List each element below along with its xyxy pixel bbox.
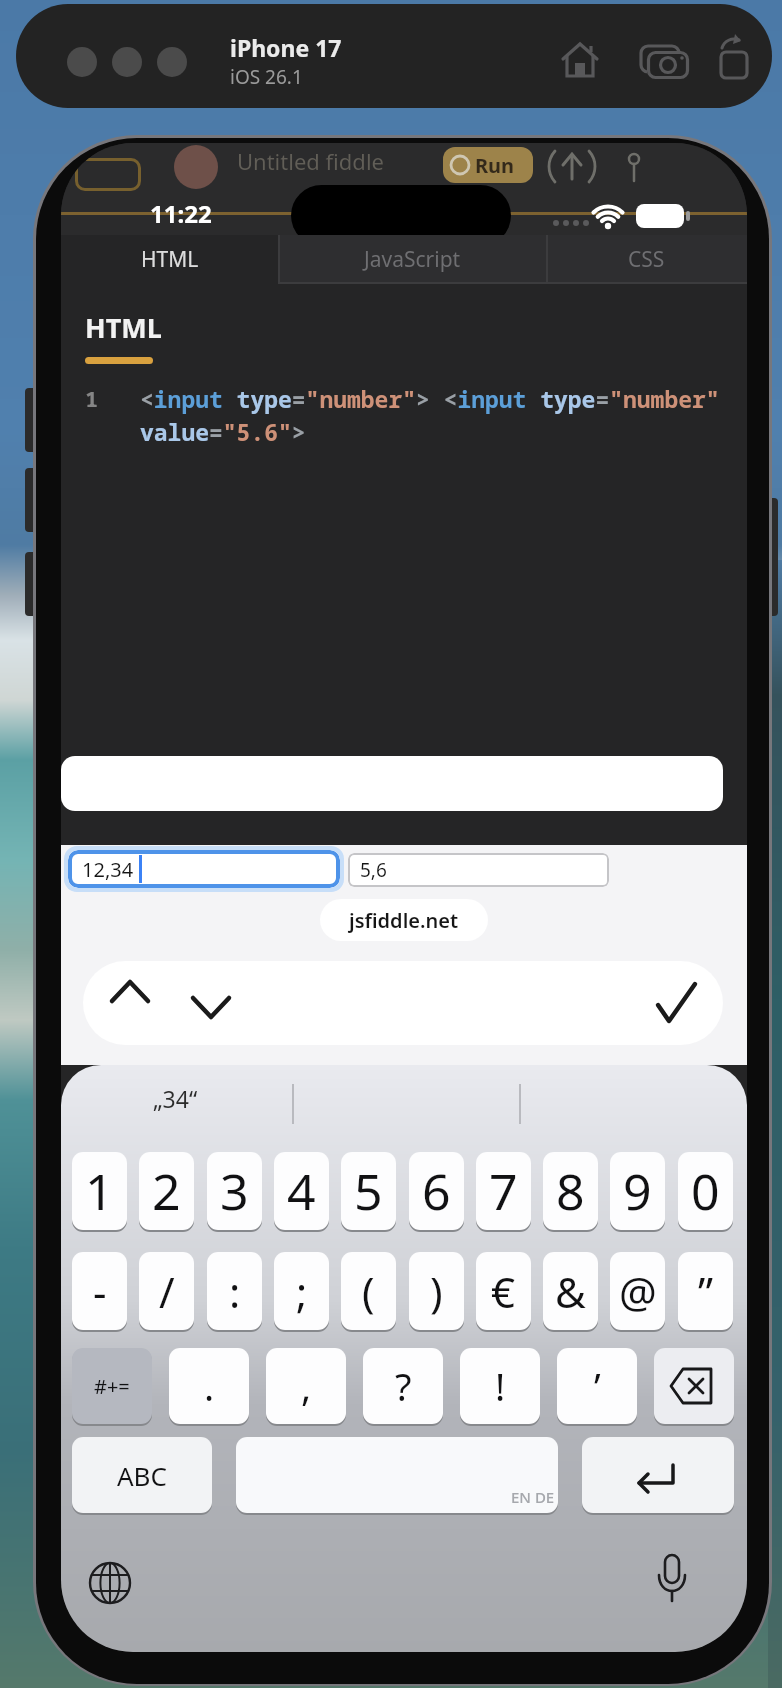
staticText: 5 [354, 1157, 383, 1225]
button[interactable]: . [169, 1348, 249, 1424]
staticText: iOS 26.1 [230, 64, 303, 90]
button[interactable]: - [72, 1252, 127, 1330]
button[interactable]: 2 [139, 1152, 194, 1230]
button[interactable]: , [266, 1348, 346, 1424]
staticText: & [555, 1263, 586, 1320]
button[interactable]: ) [409, 1252, 464, 1330]
staticText: ” [698, 1263, 714, 1320]
staticText: #+= [94, 1373, 130, 1400]
button[interactable]: ABC [72, 1437, 212, 1513]
button[interactable] [75, 158, 141, 191]
button[interactable]: 6 [409, 1152, 464, 1230]
staticText: Run [475, 152, 515, 179]
button[interactable]: 9 [610, 1152, 665, 1230]
button[interactable] [61, 235, 278, 283]
staticText: 5,6 [360, 857, 387, 883]
staticText: 1 [85, 1157, 114, 1225]
staticText: ABC [117, 1458, 167, 1493]
staticText: ( [362, 1263, 375, 1320]
staticText: / [159, 1263, 175, 1320]
staticText: „34“ [153, 1083, 198, 1114]
button[interactable]: 4 [274, 1152, 329, 1230]
button[interactable]: 8 [543, 1152, 598, 1230]
button[interactable]: 0 [678, 1152, 733, 1230]
button[interactable]: ” [678, 1252, 733, 1330]
button[interactable]: #+= [72, 1348, 152, 1424]
button[interactable] [101, 969, 161, 1037]
staticText: 6 [422, 1157, 451, 1225]
staticText: ! [495, 1360, 506, 1412]
staticText: . [204, 1360, 215, 1412]
staticText: CSS [628, 245, 665, 274]
staticText: 8 [556, 1157, 585, 1225]
staticText: value="5.6"> [140, 416, 306, 447]
button[interactable]: 1 [72, 1152, 127, 1230]
button[interactable] [443, 147, 533, 183]
staticText: 2 [152, 1157, 181, 1225]
button[interactable] [279, 235, 546, 283]
button[interactable] [582, 1437, 734, 1513]
button[interactable] [157, 47, 187, 77]
button[interactable]: / [139, 1252, 194, 1330]
button[interactable]: & [543, 1252, 598, 1330]
staticText: Untitled fiddle [237, 146, 384, 176]
staticText: , [301, 1360, 312, 1412]
staticText: ’ [594, 1360, 601, 1412]
button[interactable]: ’ [557, 1348, 637, 1424]
staticText: <input type="number"> <input type="numbe… [140, 383, 720, 414]
staticText: EN DE [511, 1487, 555, 1507]
staticText: 4 [287, 1157, 316, 1225]
staticText: - [93, 1263, 107, 1320]
staticText: 3 [220, 1157, 249, 1225]
button[interactable]: ; [274, 1252, 329, 1330]
button[interactable] [348, 853, 609, 887]
button[interactable]: € [476, 1252, 531, 1330]
button[interactable] [67, 47, 97, 77]
staticText: HTML [85, 309, 162, 346]
button[interactable] [641, 969, 711, 1037]
staticText: @ [619, 1263, 657, 1320]
staticText: 12,34 [82, 856, 134, 883]
button[interactable]: 7 [476, 1152, 531, 1230]
staticText: ; [296, 1263, 308, 1320]
staticText: HTML [141, 245, 199, 274]
button[interactable]: 3 [207, 1152, 262, 1230]
staticText: 11:22 [150, 197, 212, 230]
button[interactable]: : [207, 1252, 262, 1330]
button[interactable]: jsfiddle.net [320, 899, 488, 941]
button[interactable]: ( [341, 1252, 396, 1330]
staticText: ? [395, 1360, 412, 1412]
staticText: : [229, 1263, 241, 1320]
staticText: € [491, 1263, 516, 1320]
button[interactable] [68, 850, 340, 888]
staticText: JavaScript [364, 245, 461, 274]
staticText: iPhone 17 [230, 32, 342, 63]
button[interactable] [654, 1348, 734, 1424]
staticText: ) [430, 1263, 443, 1320]
staticText: 0 [691, 1157, 720, 1225]
button[interactable] [236, 1437, 558, 1513]
button[interactable]: @ [610, 1252, 665, 1330]
staticText: 1 [85, 383, 99, 413]
button[interactable] [547, 235, 747, 283]
staticText: jsfiddle.net [349, 907, 459, 934]
button[interactable]: ! [460, 1348, 540, 1424]
button[interactable] [181, 969, 241, 1037]
staticText: 9 [623, 1157, 652, 1225]
button[interactable]: 5 [341, 1152, 396, 1230]
button[interactable] [112, 47, 142, 77]
button[interactable]: ? [363, 1348, 443, 1424]
staticText: 7 [489, 1157, 518, 1225]
